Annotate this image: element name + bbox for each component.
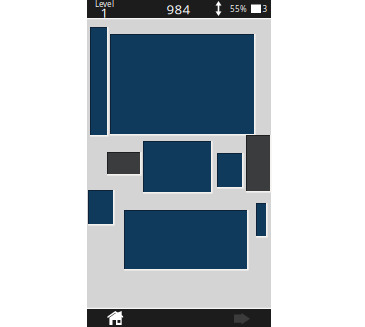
button[interactable]: Next level xyxy=(219,310,265,327)
button[interactable]: Level xyxy=(87,0,121,18)
staticText: 3 xyxy=(262,4,267,14)
button[interactable]: Home xyxy=(92,309,138,327)
staticText: 1 xyxy=(100,4,108,21)
staticText: 984 xyxy=(166,0,190,18)
staticText: 55% xyxy=(230,4,247,14)
staticText: Level xyxy=(95,0,114,9)
